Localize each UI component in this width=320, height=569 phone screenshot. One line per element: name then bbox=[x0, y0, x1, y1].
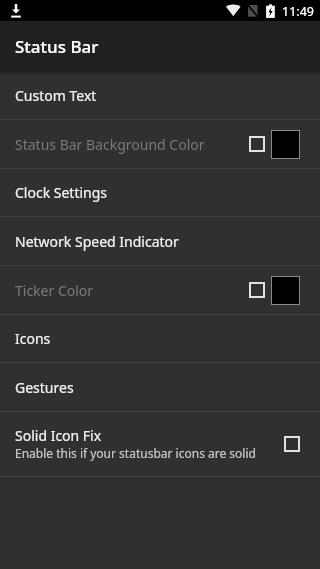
other: Enable Status Bar Background Color bbox=[249, 136, 265, 152]
other: Enable Ticker Color bbox=[249, 282, 265, 298]
staticText: Ticker Color bbox=[15, 281, 94, 300]
button[interactable]: Clock Settings bbox=[0, 168, 320, 217]
staticText: Solid Icon Fix bbox=[15, 426, 102, 445]
staticText: Network Speed Indicator bbox=[15, 232, 179, 251]
button[interactable]: Status Bar Background Color bbox=[0, 120, 320, 169]
staticText: Enable this if your statusbar icons are … bbox=[15, 445, 256, 461]
button[interactable]: Network Speed Indicator bbox=[0, 217, 320, 266]
staticText: Custom Text bbox=[15, 86, 97, 105]
staticText: Status Bar Background Color bbox=[15, 135, 205, 154]
button[interactable]: Custom Text bbox=[0, 71, 320, 120]
button[interactable]: Ticker Color bbox=[0, 266, 320, 315]
button[interactable]: Icons bbox=[0, 314, 320, 363]
button[interactable]: Solid Icon Fix bbox=[0, 412, 320, 477]
staticText: Gestures bbox=[15, 378, 74, 397]
staticText: Status Bar bbox=[15, 35, 99, 58]
staticText: Clock Settings bbox=[15, 183, 108, 202]
staticText: 11:49 bbox=[282, 3, 314, 20]
button[interactable]: Gestures bbox=[0, 363, 320, 412]
staticText: Icons bbox=[15, 329, 51, 348]
